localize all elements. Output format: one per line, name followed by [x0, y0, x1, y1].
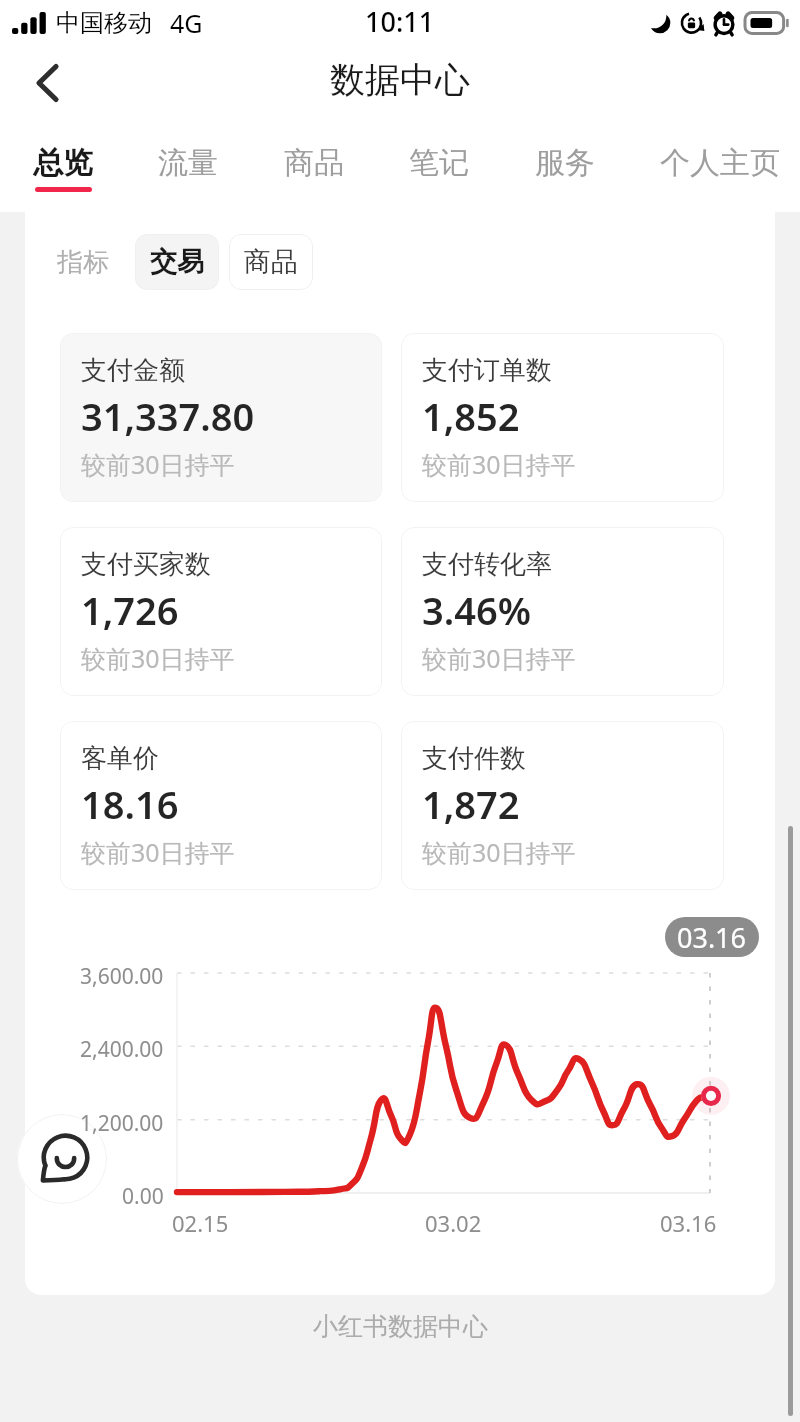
- staticText: 流量: [158, 144, 218, 182]
- staticText: 03.02: [425, 1208, 482, 1238]
- staticText: 1,852: [422, 390, 520, 442]
- staticText: 商品: [244, 245, 298, 279]
- staticText: 交易: [150, 245, 204, 279]
- staticText: 18.16: [81, 778, 179, 830]
- button[interactable]: 支付转化率: [401, 527, 724, 696]
- staticText: 10:11: [365, 3, 435, 40]
- staticText: 0.00: [122, 1182, 164, 1211]
- button[interactable]: 支付买家数: [60, 527, 382, 696]
- button[interactable]: 商品: [278, 123, 350, 212]
- button[interactable]: 指标: [47, 236, 119, 289]
- staticText: 较前30日持平: [422, 641, 576, 675]
- staticText: 小红书数据中心: [313, 1311, 488, 1342]
- staticText: 较前30日持平: [422, 835, 576, 869]
- staticText: 较前30日持平: [422, 447, 576, 481]
- button[interactable]: 03.16: [665, 917, 759, 957]
- staticText: 02.15: [172, 1208, 229, 1238]
- staticText: 1,726: [81, 584, 179, 636]
- staticText: 1,872: [422, 778, 520, 830]
- button[interactable]: 商品: [229, 234, 313, 290]
- staticText: 03.16: [677, 919, 747, 956]
- button[interactable]: Back: [14, 52, 78, 116]
- staticText: 较前30日持平: [81, 447, 235, 481]
- button[interactable]: 支付金额: [60, 333, 382, 502]
- staticText: 较前30日持平: [81, 641, 235, 675]
- staticText: 指标: [57, 246, 109, 279]
- staticText: 支付件数: [422, 742, 526, 775]
- staticText: 支付买家数: [81, 548, 211, 581]
- staticText: 数据中心: [330, 58, 470, 102]
- button[interactable]: 流量: [152, 123, 224, 212]
- staticText: 个人主页: [660, 144, 780, 182]
- staticText: 中国移动: [56, 8, 152, 38]
- staticText: 3.46%: [422, 584, 531, 636]
- staticText: 总览: [33, 144, 93, 182]
- staticText: 31,337.80: [81, 390, 255, 442]
- button[interactable]: 支付件数: [401, 721, 724, 890]
- staticText: 支付转化率: [422, 548, 552, 581]
- button[interactable]: 客单价: [60, 721, 382, 890]
- staticText: 商品: [284, 144, 344, 182]
- staticText: 4G: [170, 6, 203, 40]
- staticText: 3,600.00: [80, 962, 164, 991]
- button[interactable]: 总览: [27, 123, 99, 212]
- button[interactable]: 服务: [529, 123, 601, 212]
- staticText: 支付金额: [81, 354, 185, 387]
- button[interactable]: 支付订单数: [401, 333, 724, 502]
- staticText: 1,200.00: [80, 1109, 164, 1138]
- staticText: 03.16: [660, 1208, 717, 1238]
- button[interactable]: 交易: [135, 234, 219, 290]
- staticText: 笔记: [409, 144, 469, 182]
- staticText: 较前30日持平: [81, 835, 235, 869]
- button[interactable]: Customer service chat: [17, 1114, 107, 1204]
- button[interactable]: 笔记: [403, 123, 475, 212]
- button[interactable]: 个人主页: [654, 123, 786, 212]
- staticText: 服务: [535, 144, 595, 182]
- staticText: 2,400.00: [80, 1035, 164, 1064]
- staticText: 客单价: [81, 742, 159, 775]
- staticText: 支付订单数: [422, 354, 552, 387]
